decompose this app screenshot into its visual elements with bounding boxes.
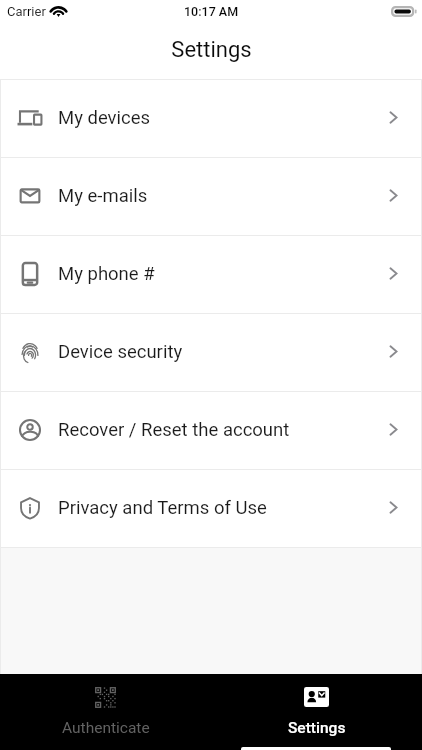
- button[interactable]: My devices: [0, 80, 422, 157]
- other: Authenticate: [95, 687, 116, 707]
- button[interactable]: Recover / Reset the account: [0, 392, 422, 469]
- other: Settings: [304, 687, 329, 707]
- button[interactable]: Authenticate: [0, 674, 211, 750]
- staticText: Authenticate: [62, 719, 150, 737]
- button[interactable]: Device security: [0, 314, 422, 391]
- staticText: Settings: [288, 719, 346, 737]
- staticText: 10:17 AM: [184, 4, 239, 19]
- staticText: Settings: [171, 37, 252, 63]
- staticText: My devices: [58, 107, 151, 129]
- staticText: Privacy and Terms of Use: [58, 497, 267, 519]
- staticText: Device security: [58, 341, 183, 363]
- button[interactable]: Settings: [211, 674, 422, 750]
- button[interactable]: Privacy and Terms of Use: [0, 470, 422, 547]
- staticText: My phone #: [58, 263, 155, 285]
- button[interactable]: My e-mails: [0, 158, 422, 235]
- staticText: Carrier: [7, 4, 46, 19]
- button[interactable]: My phone #: [0, 236, 422, 313]
- staticText: My e-mails: [58, 185, 148, 207]
- staticText: Recover / Reset the account: [58, 419, 290, 441]
